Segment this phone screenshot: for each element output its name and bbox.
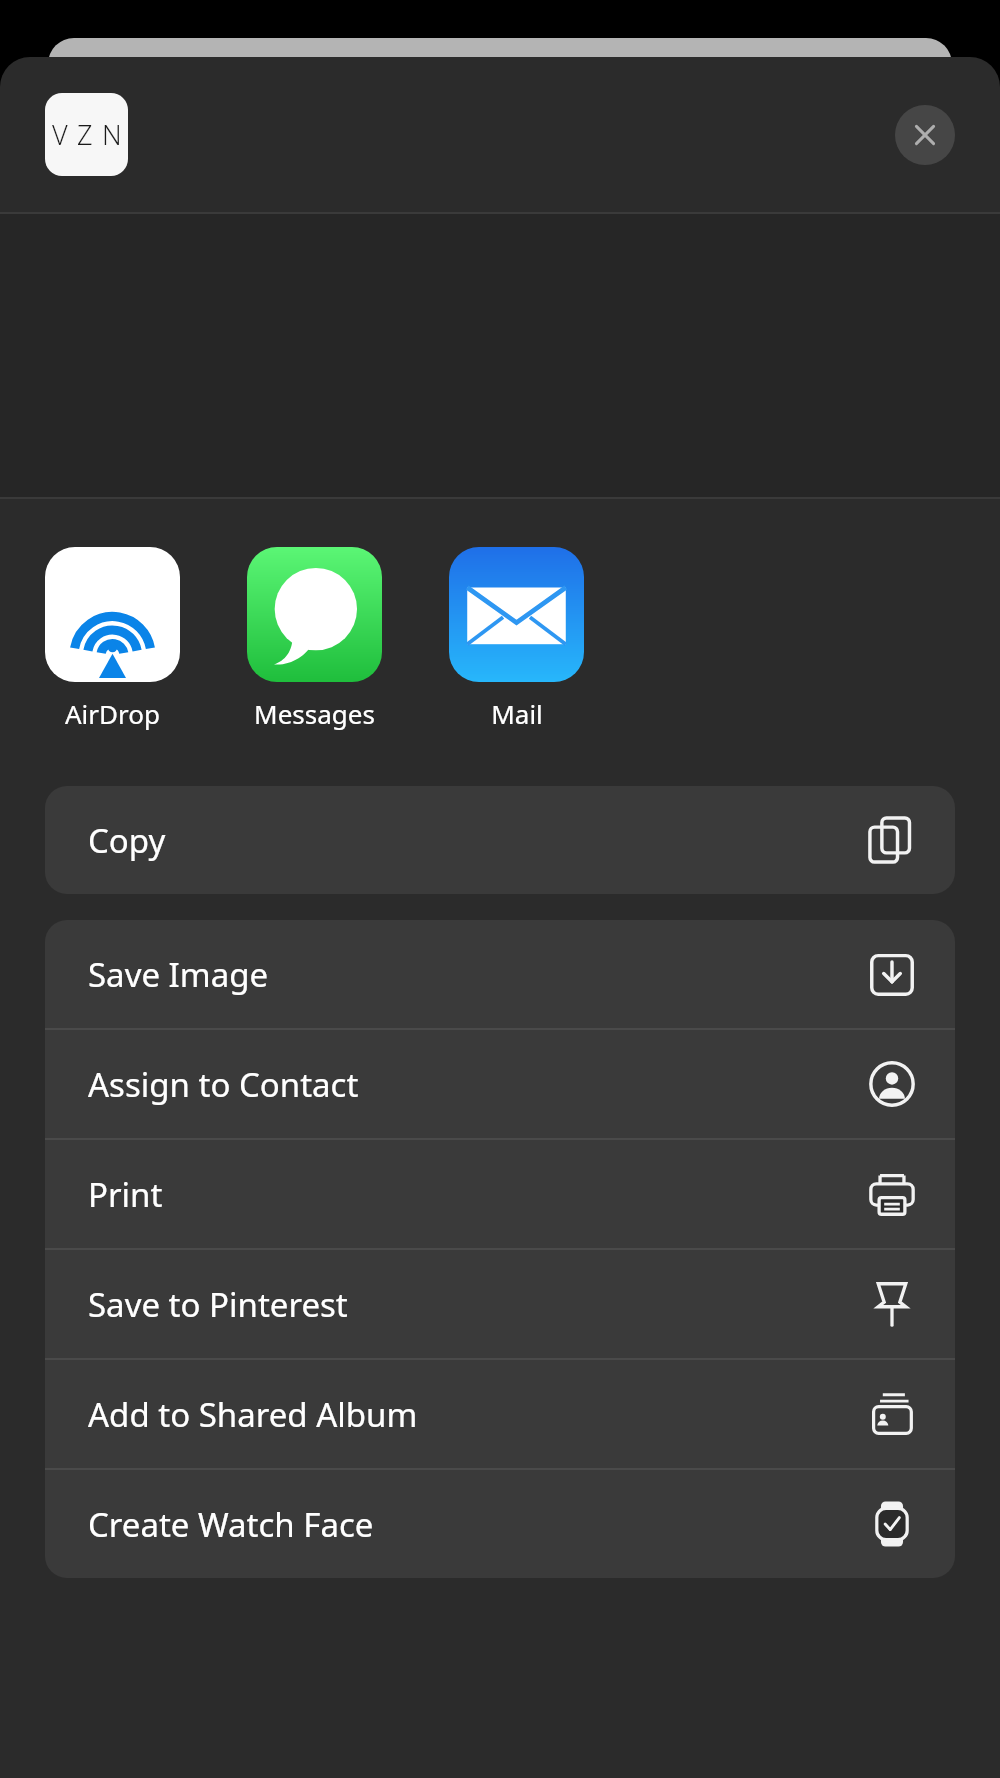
staticText: Save to Pinterest xyxy=(88,1282,869,1327)
staticText: Mail xyxy=(491,696,543,731)
staticText: Print xyxy=(88,1172,869,1217)
button[interactable]: Close xyxy=(895,105,955,165)
staticText: Add to Shared Album xyxy=(88,1392,869,1437)
button[interactable]: Messages xyxy=(247,547,382,731)
staticText: V xyxy=(52,116,68,153)
button[interactable]: Create Watch Face xyxy=(45,1470,955,1578)
staticText: Create Watch Face xyxy=(88,1502,869,1547)
button[interactable]: Print xyxy=(45,1140,955,1248)
staticText: Copy xyxy=(88,818,869,863)
staticText: Z xyxy=(77,116,93,153)
staticText: AirDrop xyxy=(65,696,160,731)
staticText: Messages xyxy=(254,696,375,731)
button[interactable]: V xyxy=(45,93,128,176)
button[interactable]: Mail xyxy=(449,547,584,731)
button[interactable]: AirDrop xyxy=(45,547,180,731)
button[interactable]: Assign to Contact xyxy=(45,1030,955,1138)
button[interactable]: Add to Shared Album xyxy=(45,1360,955,1468)
button[interactable]: Save to Pinterest xyxy=(45,1250,955,1358)
staticText: N xyxy=(102,116,122,153)
staticText: Save Image xyxy=(88,952,869,997)
staticText: Assign to Contact xyxy=(88,1062,869,1107)
button[interactable]: Save Image xyxy=(45,920,955,1028)
button[interactable]: Copy xyxy=(45,786,955,894)
